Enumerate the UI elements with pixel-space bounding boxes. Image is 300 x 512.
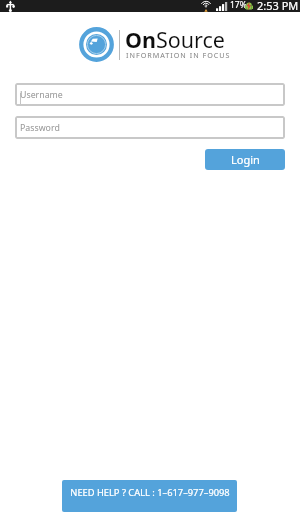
staticText: OnSource: [125, 25, 225, 54]
button[interactable]: Username: [15, 83, 285, 106]
button[interactable]: Login: [205, 149, 285, 170]
staticText: Username: [20, 89, 63, 101]
staticText: INFORMATION IN FOCUS: [126, 50, 231, 60]
staticText: Password: [20, 122, 60, 134]
staticText: 2:53 PM: [257, 0, 299, 10]
staticText: NEED HELP ? CALL : 1–617–977–9098: [70, 486, 230, 499]
staticText: Login: [231, 152, 260, 167]
staticText: 17%: [230, 0, 247, 11]
button[interactable]: Password: [15, 116, 285, 139]
button[interactable]: NEED HELP ? CALL : 1–617–977–9098: [62, 480, 237, 512]
